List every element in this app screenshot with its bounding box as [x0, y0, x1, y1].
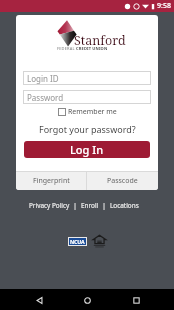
staticText: CREDIT UNION: [76, 46, 108, 51]
button[interactable]: Home: [77, 290, 97, 310]
staticText: |: [99, 201, 110, 210]
staticText: 9:58: [157, 1, 171, 11]
button[interactable]: Back: [29, 290, 49, 310]
staticText: NCUA: [70, 238, 85, 245]
button[interactable]: Remember me: [58, 107, 117, 117]
button[interactable]: Login ID: [23, 71, 151, 85]
staticText: Login ID: [27, 73, 59, 84]
button[interactable]: Log In: [24, 141, 150, 158]
button[interactable]: Enroll: [81, 201, 99, 210]
button[interactable]: Forgot your password?: [39, 123, 136, 135]
staticText: Stanford: [74, 32, 126, 49]
button[interactable]: Password: [23, 90, 151, 104]
button[interactable]: Locations: [110, 201, 139, 210]
staticText: Passcode: [107, 176, 138, 186]
button[interactable]: Privacy Policy: [29, 201, 70, 210]
staticText: Fingerprint: [33, 176, 70, 186]
staticText: Password: [27, 92, 64, 103]
button[interactable]: Passcode: [87, 171, 158, 190]
staticText: Remember me: [68, 107, 117, 117]
staticText: FEDERAL: [57, 46, 76, 51]
button[interactable]: Recent apps: [126, 290, 146, 310]
staticText: |: [70, 201, 81, 210]
staticText: Log In: [70, 142, 104, 157]
button[interactable]: Fingerprint: [16, 171, 86, 190]
